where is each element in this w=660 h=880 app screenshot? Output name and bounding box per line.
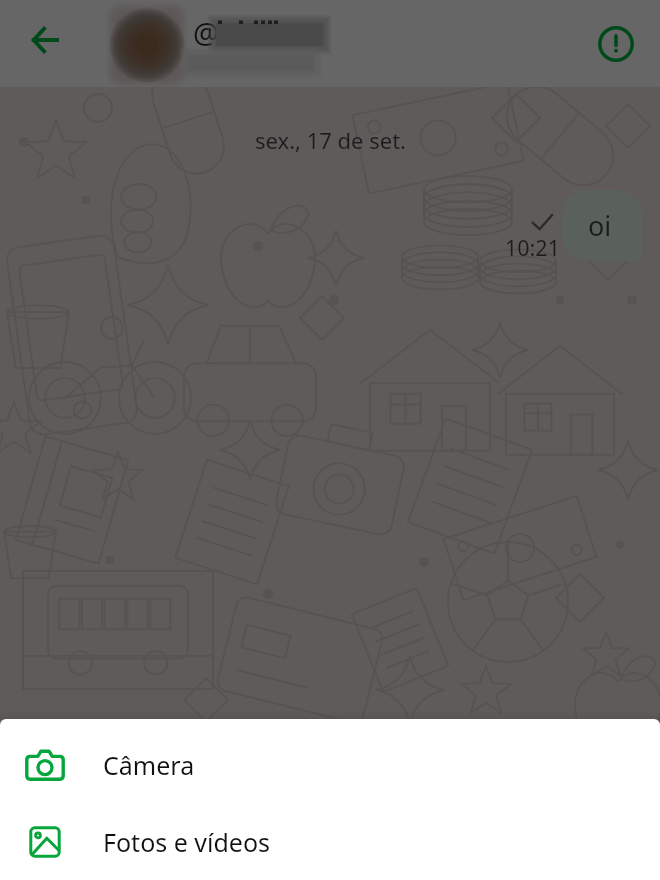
button[interactable]: Back: [17, 12, 73, 68]
staticText: sex., 17 de set.: [255, 125, 406, 155]
staticText: oi: [588, 207, 612, 244]
button[interactable]: Fotos e vídeos: [0, 803, 660, 880]
staticText: Fotos e vídeos: [103, 825, 271, 859]
staticText: Câmera: [103, 748, 195, 782]
button[interactable]: Câmera: [0, 726, 660, 803]
staticText: @: [193, 13, 220, 52]
staticText: 10:21: [505, 233, 560, 262]
button[interactable]: Contact info: [590, 18, 642, 70]
